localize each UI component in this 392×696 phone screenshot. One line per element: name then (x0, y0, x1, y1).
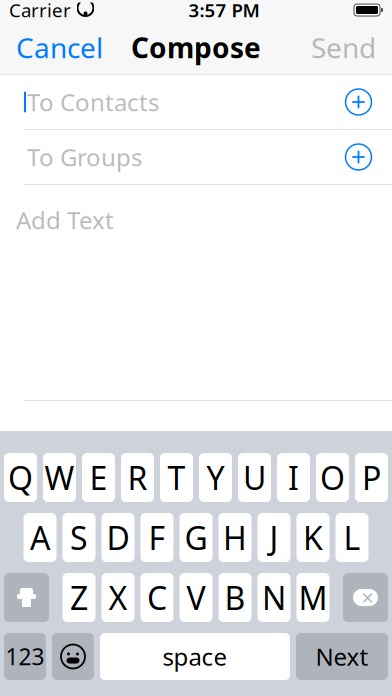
staticText: Z (70, 576, 88, 619)
staticText: S (70, 516, 88, 559)
button[interactable]: Send (295, 20, 392, 75)
button[interactable]: V (179, 573, 212, 622)
staticText: R (127, 456, 147, 499)
staticText: Q (8, 456, 33, 499)
button[interactable]: Q (4, 453, 37, 502)
staticText: C (147, 576, 167, 619)
staticText: Next (315, 641, 368, 672)
button[interactable]: N (257, 573, 290, 622)
staticText: L (343, 516, 360, 559)
staticText: T (167, 456, 185, 499)
staticText: 123 (5, 641, 44, 671)
button[interactable]: 123 (4, 633, 46, 680)
staticText: W (44, 456, 74, 499)
staticText: J (269, 516, 278, 559)
staticText: G (184, 516, 207, 559)
staticText: space (162, 641, 227, 672)
button[interactable]: H (218, 513, 251, 562)
staticText: D (106, 516, 129, 559)
button[interactable]: Y (199, 453, 232, 502)
button[interactable]: A (23, 513, 56, 562)
staticText: Carrier (9, 0, 71, 22)
button[interactable]: Next (296, 633, 388, 680)
button[interactable]: P (355, 453, 388, 502)
staticText: A (30, 516, 50, 559)
button[interactable]: T (160, 453, 193, 502)
staticText: × (361, 583, 373, 612)
button[interactable]: L (335, 513, 368, 562)
staticText: I (288, 456, 299, 499)
button[interactable]: Z (62, 573, 95, 622)
button[interactable]: Delete (343, 573, 388, 622)
staticText: To Contacts (27, 86, 159, 118)
button[interactable]: Shift (4, 573, 49, 622)
staticText: Send (311, 29, 376, 66)
button[interactable]: Add To Contacts (335, 80, 382, 123)
button[interactable]: E (82, 453, 115, 502)
staticText: Cancel (16, 29, 103, 66)
button[interactable]: X (101, 573, 134, 622)
button[interactable]: M (296, 573, 329, 622)
button[interactable]: Emoji keyboard (52, 633, 94, 680)
button[interactable]: I (277, 453, 310, 502)
button[interactable]: Cancel (0, 20, 119, 75)
button[interactable]: C (140, 573, 173, 622)
button[interactable]: G (179, 513, 212, 562)
button[interactable]: U (238, 453, 271, 502)
staticText: E (89, 456, 107, 499)
button[interactable]: B (218, 573, 251, 622)
button[interactable]: F (140, 513, 173, 562)
button[interactable]: J (257, 513, 290, 562)
staticText: Compose (131, 29, 261, 66)
staticText: Add Text (16, 204, 114, 236)
staticText: To Groups (27, 141, 142, 173)
staticText: B (224, 576, 245, 619)
button[interactable]: R (121, 453, 154, 502)
button[interactable]: Add To Groups (335, 135, 382, 178)
staticText: U (243, 456, 266, 499)
staticText: P (362, 456, 381, 499)
button[interactable]: space (100, 633, 290, 680)
staticText: X (108, 576, 127, 619)
staticText: K (303, 516, 323, 559)
button[interactable]: S (62, 513, 95, 562)
staticText: H (223, 516, 247, 559)
button[interactable]: K (296, 513, 329, 562)
staticText: M (298, 576, 327, 619)
staticText: N (262, 576, 286, 619)
staticText: Y (206, 456, 224, 499)
staticText: F (148, 516, 165, 559)
button[interactable]: W (43, 453, 76, 502)
staticText: V (186, 576, 205, 619)
button[interactable]: D (101, 513, 134, 562)
staticText: O (320, 456, 345, 499)
staticText: 3:57 PM (188, 0, 259, 22)
button[interactable]: O (316, 453, 349, 502)
